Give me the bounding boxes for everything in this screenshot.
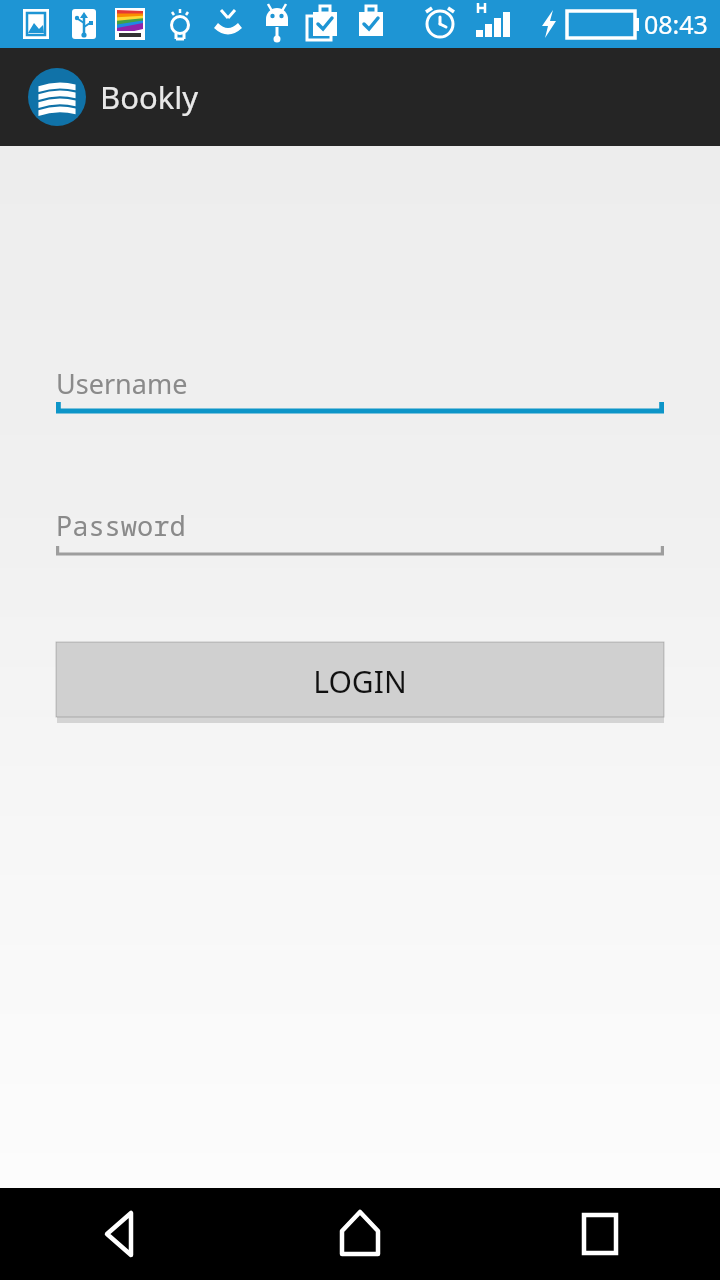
- button[interactable]: Back: [0, 1188, 240, 1280]
- button[interactable]: Recents: [480, 1188, 720, 1280]
- staticText: 08:43: [644, 7, 708, 41]
- button[interactable]: Username: [56, 352, 664, 414]
- other: Bookly logo: [28, 68, 86, 126]
- button[interactable]: LOGIN: [56, 642, 664, 720]
- button[interactable]: Password: [56, 494, 664, 556]
- staticText: LOGIN: [313, 661, 407, 702]
- staticText: Password: [56, 507, 186, 544]
- staticText: Bookly: [100, 76, 199, 118]
- staticText: Username: [56, 365, 188, 402]
- button[interactable]: Home: [240, 1188, 480, 1280]
